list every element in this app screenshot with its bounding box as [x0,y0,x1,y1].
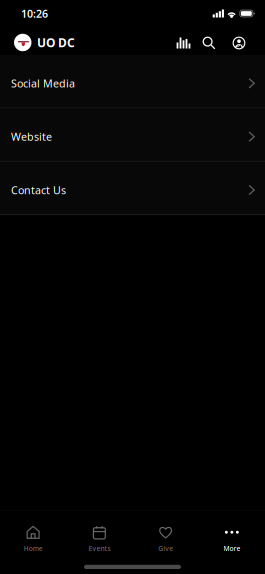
button[interactable]: Search [196,27,221,55]
button[interactable]: Events [66,510,132,557]
button[interactable]: Account [226,27,251,55]
staticText: UO DC [37,34,75,50]
staticText: Contact Us [11,183,66,197]
button[interactable]: UO DC [0,27,83,55]
button[interactable]: Home [0,510,66,557]
button[interactable]: Social Media [0,55,265,108]
staticText: Website [11,130,52,144]
button[interactable]: Statistics [171,27,196,55]
button[interactable]: More [199,510,265,557]
staticText: 10:26 [21,6,48,21]
staticText: Give [158,544,173,553]
staticText: Social Media [11,76,75,90]
staticText: Home [24,544,43,553]
button[interactable]: Contact Us [0,162,265,215]
button[interactable]: Website [0,108,265,162]
staticText: Events [88,544,110,553]
button[interactable]: Give [132,510,199,557]
staticText: More [223,544,240,553]
